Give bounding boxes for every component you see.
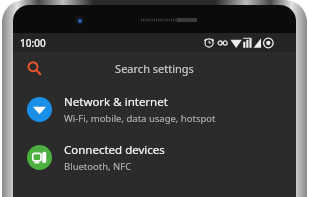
staticText: Network & internet [64, 94, 168, 110]
button[interactable]: Search [13, 52, 296, 85]
staticText: Search settings [115, 61, 194, 76]
staticText: Bluetooth, NFC [64, 160, 132, 173]
button[interactable]: Network & internet [13, 85, 296, 133]
staticText: Connected devices [64, 142, 165, 158]
staticText: Wi-Fi, mobile, data usage, hotspot [64, 112, 216, 125]
other: Search [27, 61, 42, 76]
staticText: 10:00 [20, 36, 46, 50]
button[interactable]: Connected devices [13, 133, 296, 181]
